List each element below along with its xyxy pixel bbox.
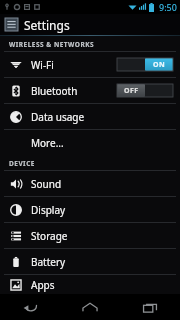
- button[interactable]: Apps: [0, 275, 180, 294]
- staticText: DEVICE: [9, 159, 35, 168]
- button[interactable]: Sound: [0, 171, 180, 196]
- button[interactable]: Battery: [0, 249, 180, 274]
- staticText: Apps: [31, 278, 55, 292]
- button[interactable]: Settings: [0, 14, 180, 35]
- staticText: Data usage: [31, 110, 85, 124]
- staticText: Sound: [31, 177, 62, 191]
- button[interactable]: Bluetooth: [0, 78, 180, 103]
- button[interactable]: Data usage: [0, 104, 180, 129]
- button[interactable]: Back: [0, 294, 60, 320]
- button[interactable]: Wi-Fi: [0, 52, 180, 77]
- staticText: OFF: [124, 86, 139, 96]
- staticText: Display: [31, 203, 66, 217]
- button[interactable]: Turn off: [117, 58, 173, 71]
- staticText: Wi-Fi: [31, 58, 54, 72]
- staticText: Battery: [31, 255, 66, 269]
- button[interactable]: More...: [0, 130, 180, 155]
- staticText: WIRELESS & NETWORKS: [9, 40, 95, 49]
- button[interactable]: Turn on: [117, 84, 173, 97]
- staticText: ON: [153, 60, 166, 70]
- staticText: 9:50: [159, 1, 177, 13]
- staticText: Storage: [31, 229, 68, 243]
- button[interactable]: Storage: [0, 223, 180, 248]
- staticText: Bluetooth: [31, 84, 78, 98]
- button[interactable]: Home: [60, 294, 120, 320]
- staticText: More...: [31, 136, 64, 150]
- staticText: Settings: [24, 17, 70, 33]
- button[interactable]: Recent apps: [120, 294, 180, 320]
- button[interactable]: Display: [0, 197, 180, 222]
